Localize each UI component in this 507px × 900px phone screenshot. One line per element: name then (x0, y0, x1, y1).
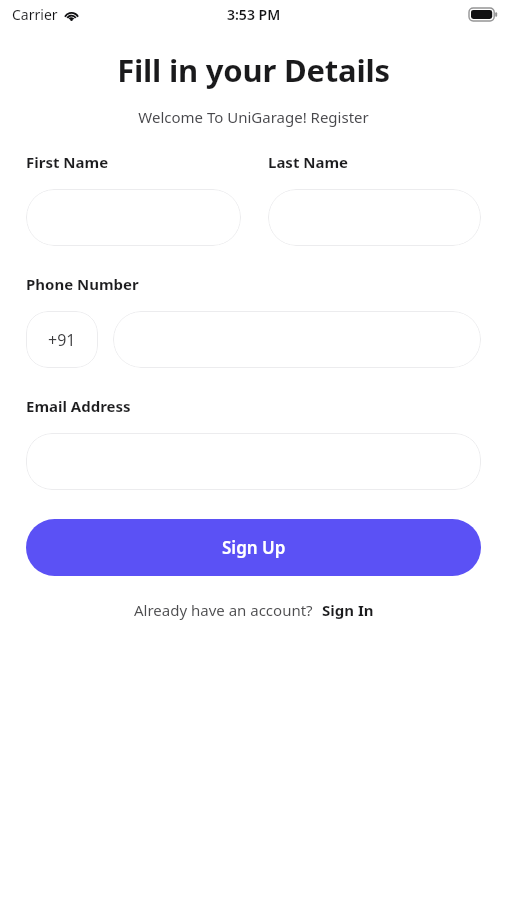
button[interactable]: Phone Number input (113, 311, 481, 368)
staticText: First Name (26, 152, 109, 172)
staticText: Carrier (12, 5, 58, 24)
button[interactable]: +91 (26, 311, 98, 368)
staticText: Already have an account? (134, 600, 313, 620)
staticText: Welcome To UniGarage! Register (16, 107, 491, 127)
button[interactable]: Last Name input (268, 189, 481, 246)
staticText: Last Name (268, 152, 349, 172)
button[interactable]: First Name input (26, 189, 241, 246)
staticText: +91 (48, 329, 76, 351)
staticText: Sign Up (222, 536, 286, 559)
staticText: Phone Number (26, 274, 139, 294)
button[interactable]: Sign In (322, 600, 374, 620)
button[interactable]: Email Address input (26, 433, 481, 490)
staticText: Sign In (322, 600, 374, 620)
staticText: Fill in your Details (16, 49, 491, 91)
staticText: 3:53 PM (227, 5, 281, 24)
button[interactable]: Sign Up (26, 519, 481, 576)
staticText: Email Address (26, 396, 131, 416)
